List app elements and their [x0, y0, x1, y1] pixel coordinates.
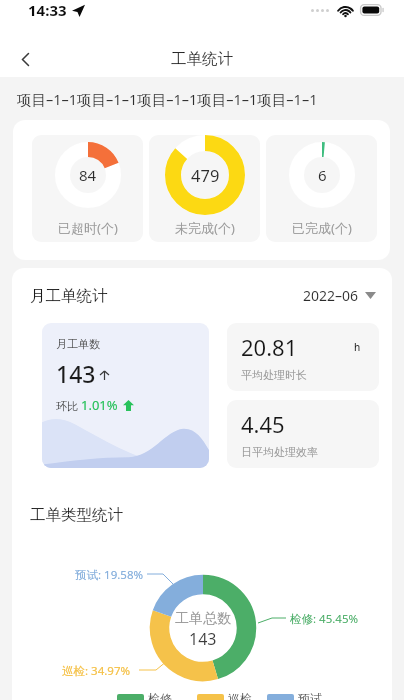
- button[interactable]: 479: [149, 135, 260, 242]
- staticText: 环比: [56, 398, 81, 413]
- staticText: 20.81: [241, 332, 298, 362]
- staticText: 日平均处理效率: [241, 445, 318, 459]
- staticText: 月工单统计: [30, 286, 108, 306]
- staticText: 4.45: [241, 409, 285, 439]
- staticText: 143: [189, 628, 217, 650]
- staticText: 已超时(个): [58, 219, 118, 237]
- staticText: 预试: [298, 691, 322, 700]
- staticText: 工单类型统计: [30, 505, 123, 525]
- staticText: 巡检: 34.97%: [62, 663, 131, 679]
- button[interactable]: 巡检: [197, 691, 252, 700]
- button[interactable]: 2022–06: [303, 286, 376, 305]
- staticText: 6: [318, 165, 327, 185]
- staticText: 检修: [148, 691, 172, 700]
- button[interactable]: 月工单数: [42, 323, 209, 468]
- button[interactable]: Back: [8, 42, 42, 76]
- staticText: 14:33: [28, 0, 67, 20]
- staticText: 预试: 19.58%: [75, 567, 144, 583]
- staticText: 检修: 45.45%: [290, 611, 359, 627]
- button[interactable]: 20.81: [227, 323, 379, 391]
- staticText: 84: [79, 165, 97, 185]
- button[interactable]: 检修: [117, 691, 172, 700]
- staticText: 2022–06: [303, 286, 359, 305]
- staticText: 143: [56, 358, 96, 389]
- staticText: 平均处理时长: [241, 368, 307, 382]
- staticText: 工单总数: [175, 610, 231, 628]
- staticText: 月工单数: [56, 337, 100, 351]
- button[interactable]: 6: [266, 135, 377, 242]
- button[interactable]: 4.45: [227, 400, 379, 468]
- staticText: 已完成(个): [292, 219, 352, 237]
- staticText: h: [354, 340, 361, 354]
- staticText: 479: [191, 164, 220, 186]
- button[interactable]: 预试: [267, 691, 322, 700]
- staticText: 工单统计: [171, 49, 233, 69]
- staticText: 项目–1–1项目–1–1项目–1–1项目–1–1项目–1–1: [17, 89, 318, 109]
- staticText: 1.01%: [81, 396, 118, 414]
- staticText: 未完成(个): [175, 219, 235, 237]
- staticText: 巡检: [228, 691, 252, 700]
- button[interactable]: 84: [32, 135, 143, 242]
